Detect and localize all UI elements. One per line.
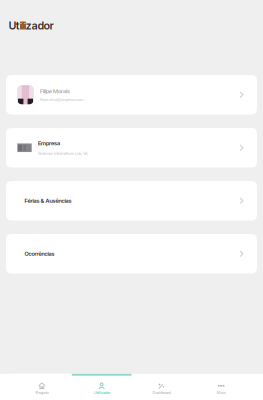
button[interactable]: Ocorrências — [6, 234, 257, 273]
staticText: Registo — [35, 390, 48, 395]
button[interactable]: Férias & Ausências — [6, 181, 257, 220]
button[interactable]: Dashboard — [131, 382, 191, 395]
button[interactable]: Utilizador — [72, 382, 132, 395]
button[interactable]: Filipe Morais — [6, 75, 257, 114]
button[interactable]: Registo — [12, 382, 72, 395]
staticText: Ocorrências — [25, 250, 55, 257]
staticText: Utilizador — [9, 19, 54, 32]
button[interactable]: Mais — [191, 382, 251, 395]
staticText: Utilizador — [94, 390, 110, 395]
staticText: Dashboard — [152, 390, 170, 395]
staticText: Mais — [217, 390, 226, 395]
staticText: Férias & Ausências — [25, 197, 72, 204]
staticText: Sistemas Informáticos Lda, SA — [38, 151, 88, 156]
staticText: filipe.silva@empresa.com — [40, 97, 83, 102]
button[interactable]: Empresa — [6, 128, 257, 167]
staticText: Empresa — [38, 140, 60, 147]
staticText: Filipe Morais — [40, 88, 70, 94]
